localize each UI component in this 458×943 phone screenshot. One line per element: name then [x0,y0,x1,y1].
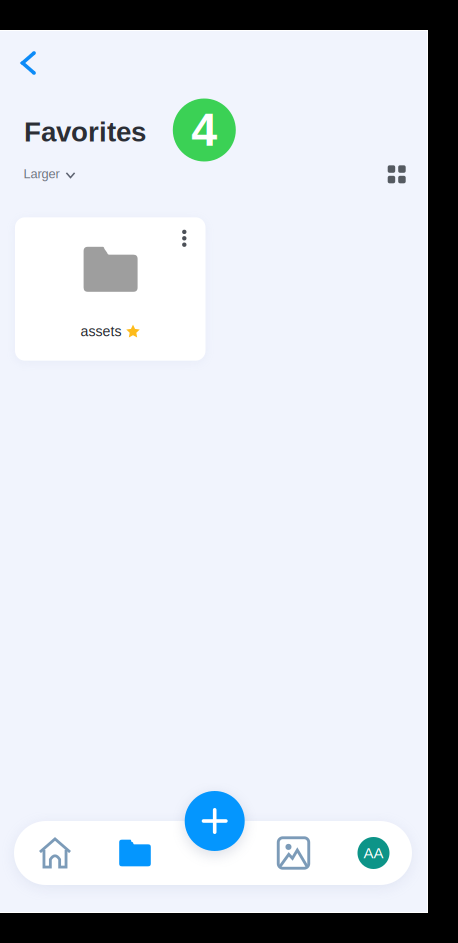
staticText: Favorites [24,116,146,147]
button[interactable]: Larger [23,161,75,187]
staticText: AA [363,845,383,861]
button[interactable]: Account [341,821,405,885]
button[interactable]: Files [103,821,167,885]
button[interactable]: Back [6,41,50,85]
button[interactable]: Add [185,791,245,851]
button[interactable]: Home [23,821,87,885]
button[interactable]: More options [170,224,198,252]
button[interactable]: Photos [261,821,325,885]
button[interactable]: assets [15,217,205,361]
staticText: 4 [191,103,217,155]
staticText: assets [80,323,121,339]
button[interactable]: Grid view [377,154,417,194]
staticText: Larger [23,167,59,181]
